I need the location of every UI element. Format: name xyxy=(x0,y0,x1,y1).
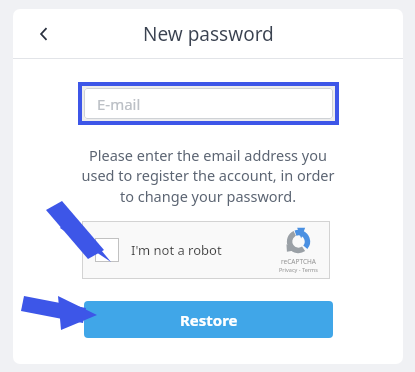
staticText: Privacy - Terms xyxy=(279,266,318,273)
staticText: New password xyxy=(143,21,274,47)
button[interactable]: E-mail xyxy=(84,88,333,119)
button[interactable]: Back xyxy=(23,13,65,55)
staticText: reCAPTCHA xyxy=(281,257,316,266)
button[interactable]: Restore xyxy=(84,301,333,338)
staticText: I'm not a robot xyxy=(131,241,222,259)
button[interactable]: I'm not a robot xyxy=(82,221,330,279)
staticText: Restore xyxy=(180,310,238,330)
staticText: E-mail xyxy=(97,94,141,114)
staticText: Please enter the email address you used … xyxy=(37,145,379,207)
